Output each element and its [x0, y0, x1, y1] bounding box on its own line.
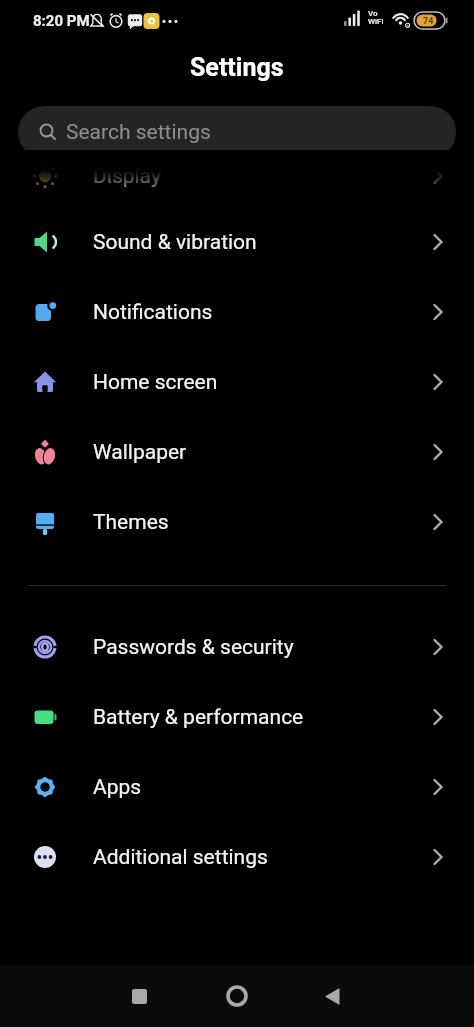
button[interactable]: Sound & vibration [0, 207, 474, 277]
staticText: Additional settings [93, 845, 268, 870]
staticText: 8:20 PM [33, 12, 90, 30]
button[interactable] [217, 976, 257, 1016]
staticText: Search settings [66, 120, 211, 145]
staticText: Home screen [93, 370, 218, 395]
staticText: Vo WiFi [368, 9, 384, 26]
staticText: Wallpaper [93, 440, 187, 465]
button[interactable]: Notifications [0, 277, 474, 347]
button[interactable]: Battery & performance [0, 682, 474, 752]
button[interactable]: Apps [0, 752, 474, 822]
button[interactable]: Home screen [0, 347, 474, 417]
staticText: 74 [423, 16, 434, 27]
button[interactable]: Wallpaper [0, 417, 474, 487]
button[interactable] [119, 976, 159, 1016]
staticText: Display [93, 164, 161, 189]
staticText: Themes [93, 510, 169, 535]
staticText: Sound & vibration [93, 230, 257, 255]
button[interactable]: Display [0, 141, 474, 211]
button[interactable]: Search settings [18, 106, 456, 158]
staticText: Notifications [93, 300, 213, 325]
staticText: Apps [93, 775, 142, 800]
staticText: Battery & performance [93, 705, 304, 730]
button[interactable]: Themes [0, 487, 474, 557]
staticText: Passwords & security [93, 635, 294, 660]
button[interactable]: Passwords & security [0, 612, 474, 682]
staticText: Settings [190, 53, 284, 82]
button[interactable]: Additional settings [0, 822, 474, 892]
button[interactable] [312, 976, 352, 1016]
